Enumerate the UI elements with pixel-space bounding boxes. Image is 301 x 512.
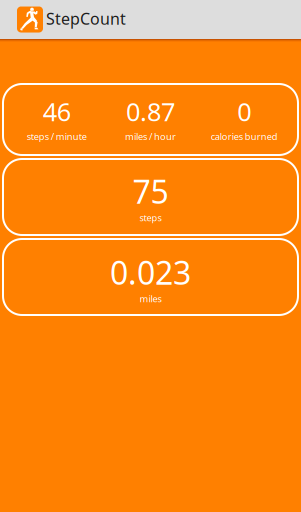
staticText: 75 — [132, 170, 168, 213]
staticText: 46 — [43, 94, 71, 128]
staticText: miles / hour — [125, 130, 176, 142]
staticText: steps — [139, 212, 161, 224]
button[interactable]: 75 — [3, 159, 298, 235]
staticText: 0 — [237, 94, 251, 128]
button[interactable]: 46 — [3, 84, 298, 155]
staticText: StepCount — [46, 8, 126, 29]
staticText: 0.023 — [110, 251, 191, 294]
button[interactable]: StepCount app icon — [17, 6, 43, 32]
staticText: calories burned — [211, 130, 278, 142]
staticText: 0.87 — [126, 94, 175, 128]
button[interactable]: 0.023 — [3, 239, 298, 315]
staticText: steps / minute — [27, 130, 87, 142]
staticText: miles — [139, 293, 161, 305]
